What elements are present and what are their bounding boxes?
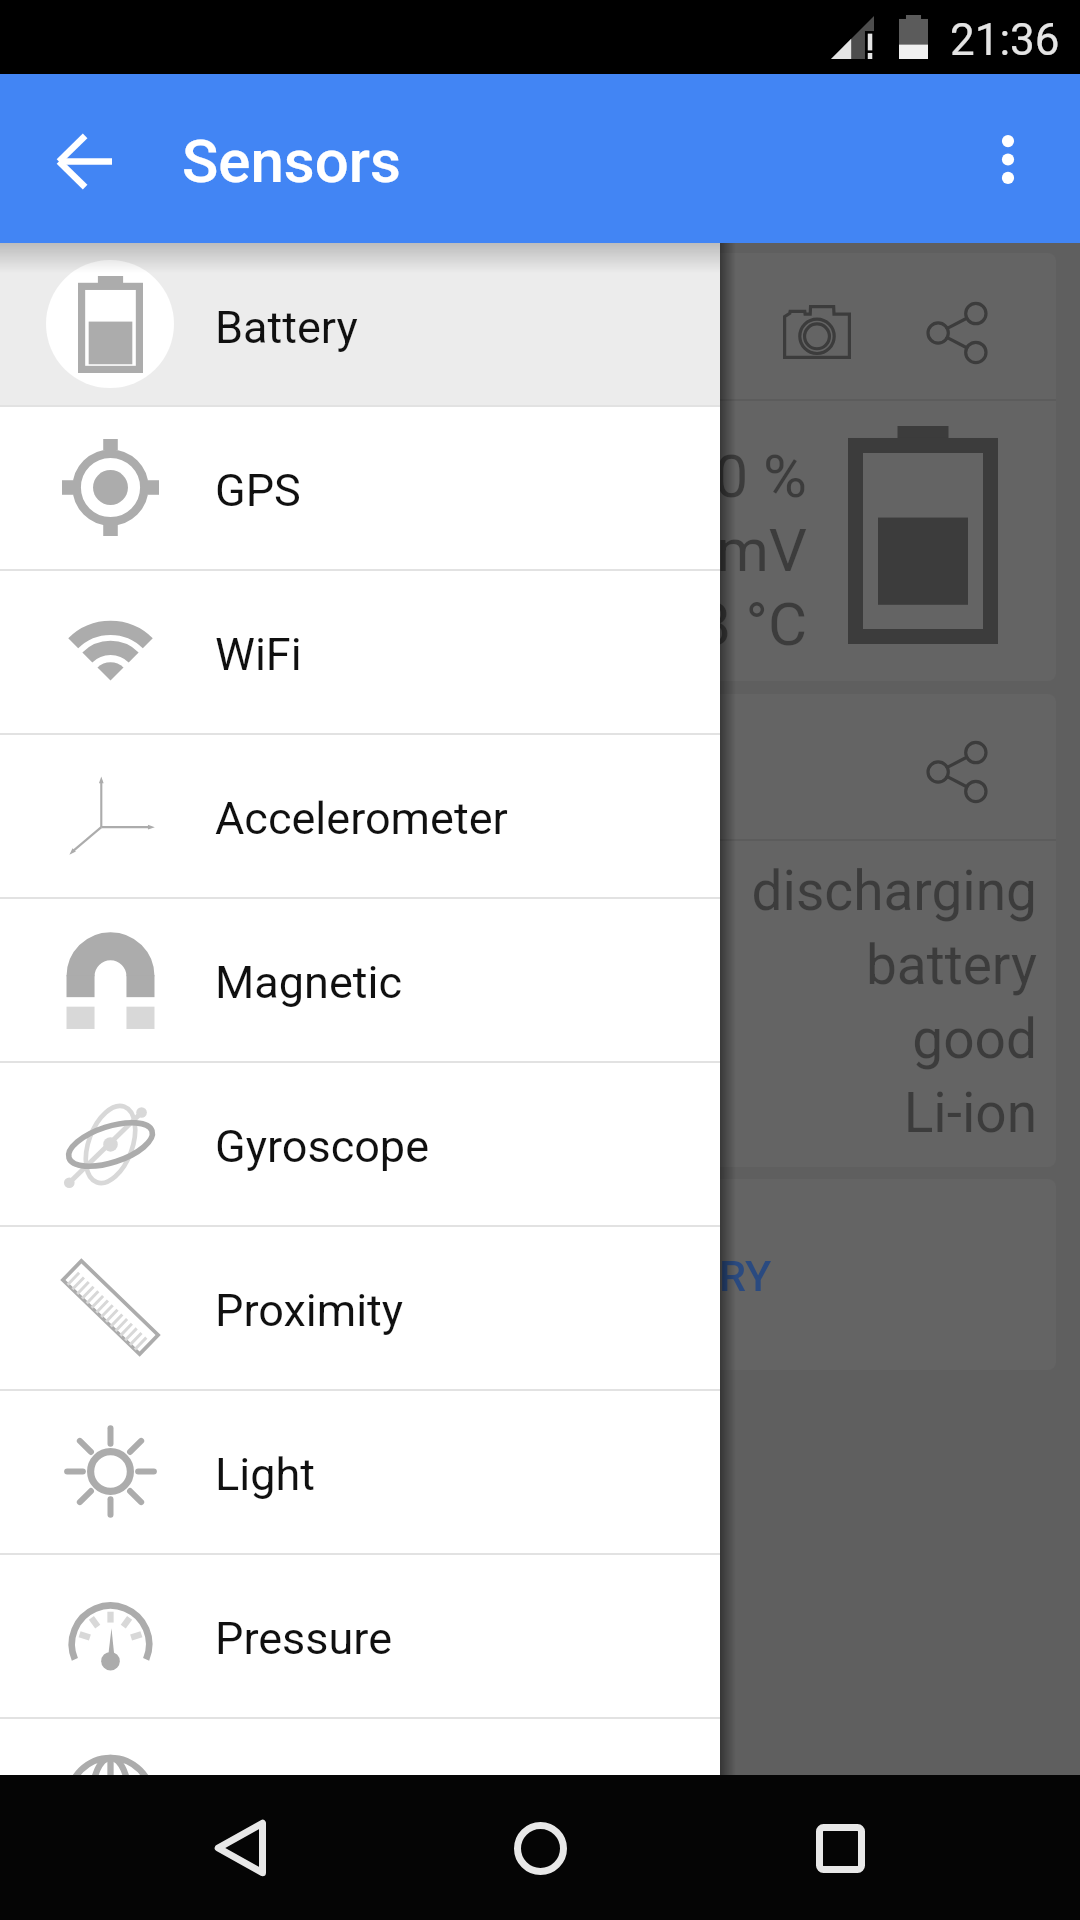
button[interactable]: Magnetic [0,897,720,1061]
button[interactable]: Navigate up [34,111,134,211]
staticText: battery [865,933,1037,997]
staticText: Humidity [215,1776,395,1829]
staticText: Proximity [215,1284,404,1337]
staticText: Sensors [182,126,401,196]
button[interactable]: Accelerometer [0,733,720,897]
staticText: Gyroscope [215,1120,429,1173]
staticText: Pressure [215,1612,393,1665]
staticText: RESET BATTERY [451,1251,772,1301]
staticText: good [912,1007,1037,1071]
button[interactable]: Gyroscope [0,1061,720,1225]
staticText: Battery [215,301,358,354]
staticText: Light [215,1448,315,1501]
button[interactable]: Recent apps [770,1778,910,1918]
staticText: 3860 mV [566,515,807,585]
button[interactable]: Close navigation drawer [720,243,1080,1775]
button[interactable]: More options [958,109,1058,209]
staticText: discharging [751,859,1037,923]
button[interactable]: WiFi [0,569,720,733]
button[interactable]: RESET BATTERY [40,1228,772,1324]
button[interactable]: Battery [0,243,720,405]
staticText: 28 °C [663,589,807,659]
button[interactable]: GPS [0,405,720,569]
button[interactable]: Back [170,1778,310,1918]
staticText: WiFi [215,628,302,681]
button[interactable]: Pressure [0,1553,720,1717]
button[interactable]: Light [0,1389,720,1553]
staticText: GPS [215,464,301,517]
button[interactable]: Home [470,1778,610,1918]
staticText: Accelerometer [215,792,508,845]
button[interactable]: Proximity [0,1225,720,1389]
button[interactable]: Humidity [0,1717,720,1881]
staticText: Li-ion [903,1081,1037,1145]
staticText: Magnetic [215,956,402,1009]
staticText: 21:36 [950,14,1060,66]
staticText: 50 % [680,441,807,511]
